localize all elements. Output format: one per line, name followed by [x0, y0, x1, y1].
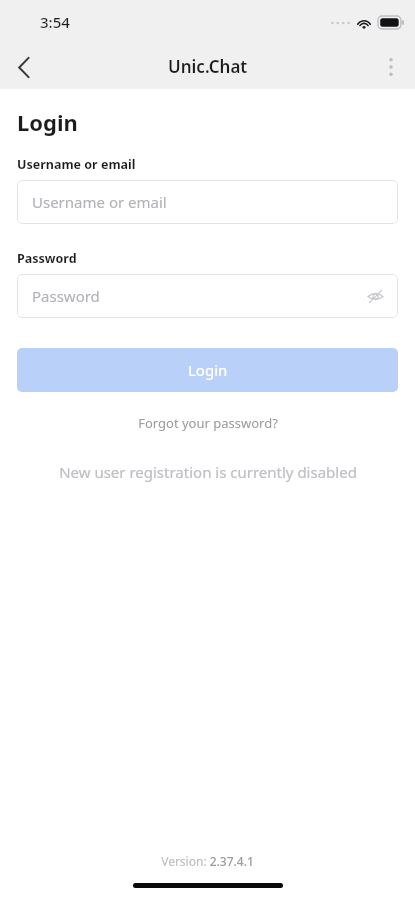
button[interactable]: More options	[371, 47, 411, 87]
staticText: Version: 2.37.4.1	[161, 853, 254, 869]
staticText: Login	[17, 107, 78, 137]
staticText: Forgot your password?	[138, 414, 278, 432]
button[interactable]: Password	[17, 274, 398, 318]
button[interactable]: Show password	[362, 283, 388, 309]
staticText: Password	[32, 286, 100, 306]
staticText: Username or email	[17, 156, 136, 173]
staticText: Login	[188, 360, 228, 380]
button[interactable]: Username or email	[17, 180, 398, 224]
staticText: Unic.Chat	[168, 55, 248, 78]
button[interactable]: Back	[4, 47, 44, 87]
staticText: New user registration is currently disab…	[59, 462, 357, 482]
button[interactable]: Forgot your password?	[17, 414, 398, 432]
staticText: 3:54	[40, 12, 70, 32]
staticText: Password	[17, 250, 77, 267]
staticText: Username or email	[32, 192, 167, 212]
button[interactable]: Login	[17, 348, 398, 392]
